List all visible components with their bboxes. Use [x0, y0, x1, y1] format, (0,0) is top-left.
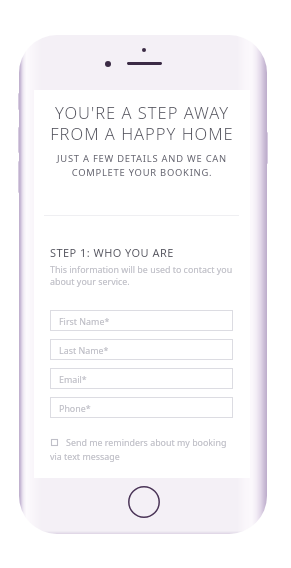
staticText: STEP 1: WHO YOU ARE [50, 245, 174, 260]
staticText: YOU'RE A STEP AWAY FROM A HAPPY HOME [34, 101, 250, 145]
staticText: This information will be used to contact… [50, 263, 249, 288]
button[interactable]: Email* [50, 368, 233, 389]
staticText: Email* [59, 373, 87, 385]
button[interactable]: Phone* [50, 397, 233, 418]
staticText: Last Name* [59, 344, 109, 356]
staticText: First Name* [59, 315, 110, 327]
button[interactable]: First Name* [50, 310, 233, 331]
button[interactable]: Last Name* [50, 339, 233, 360]
staticText: Phone* [59, 402, 91, 414]
button[interactable]: Send me reminders about my booking [50, 436, 233, 466]
staticText: via text message [50, 450, 120, 462]
button[interactable]: Home [128, 486, 160, 518]
staticText: Send me reminders about my booking [66, 436, 227, 448]
staticText: JUST A FEW DETAILS AND WE CAN COMPLETE Y… [34, 152, 250, 179]
